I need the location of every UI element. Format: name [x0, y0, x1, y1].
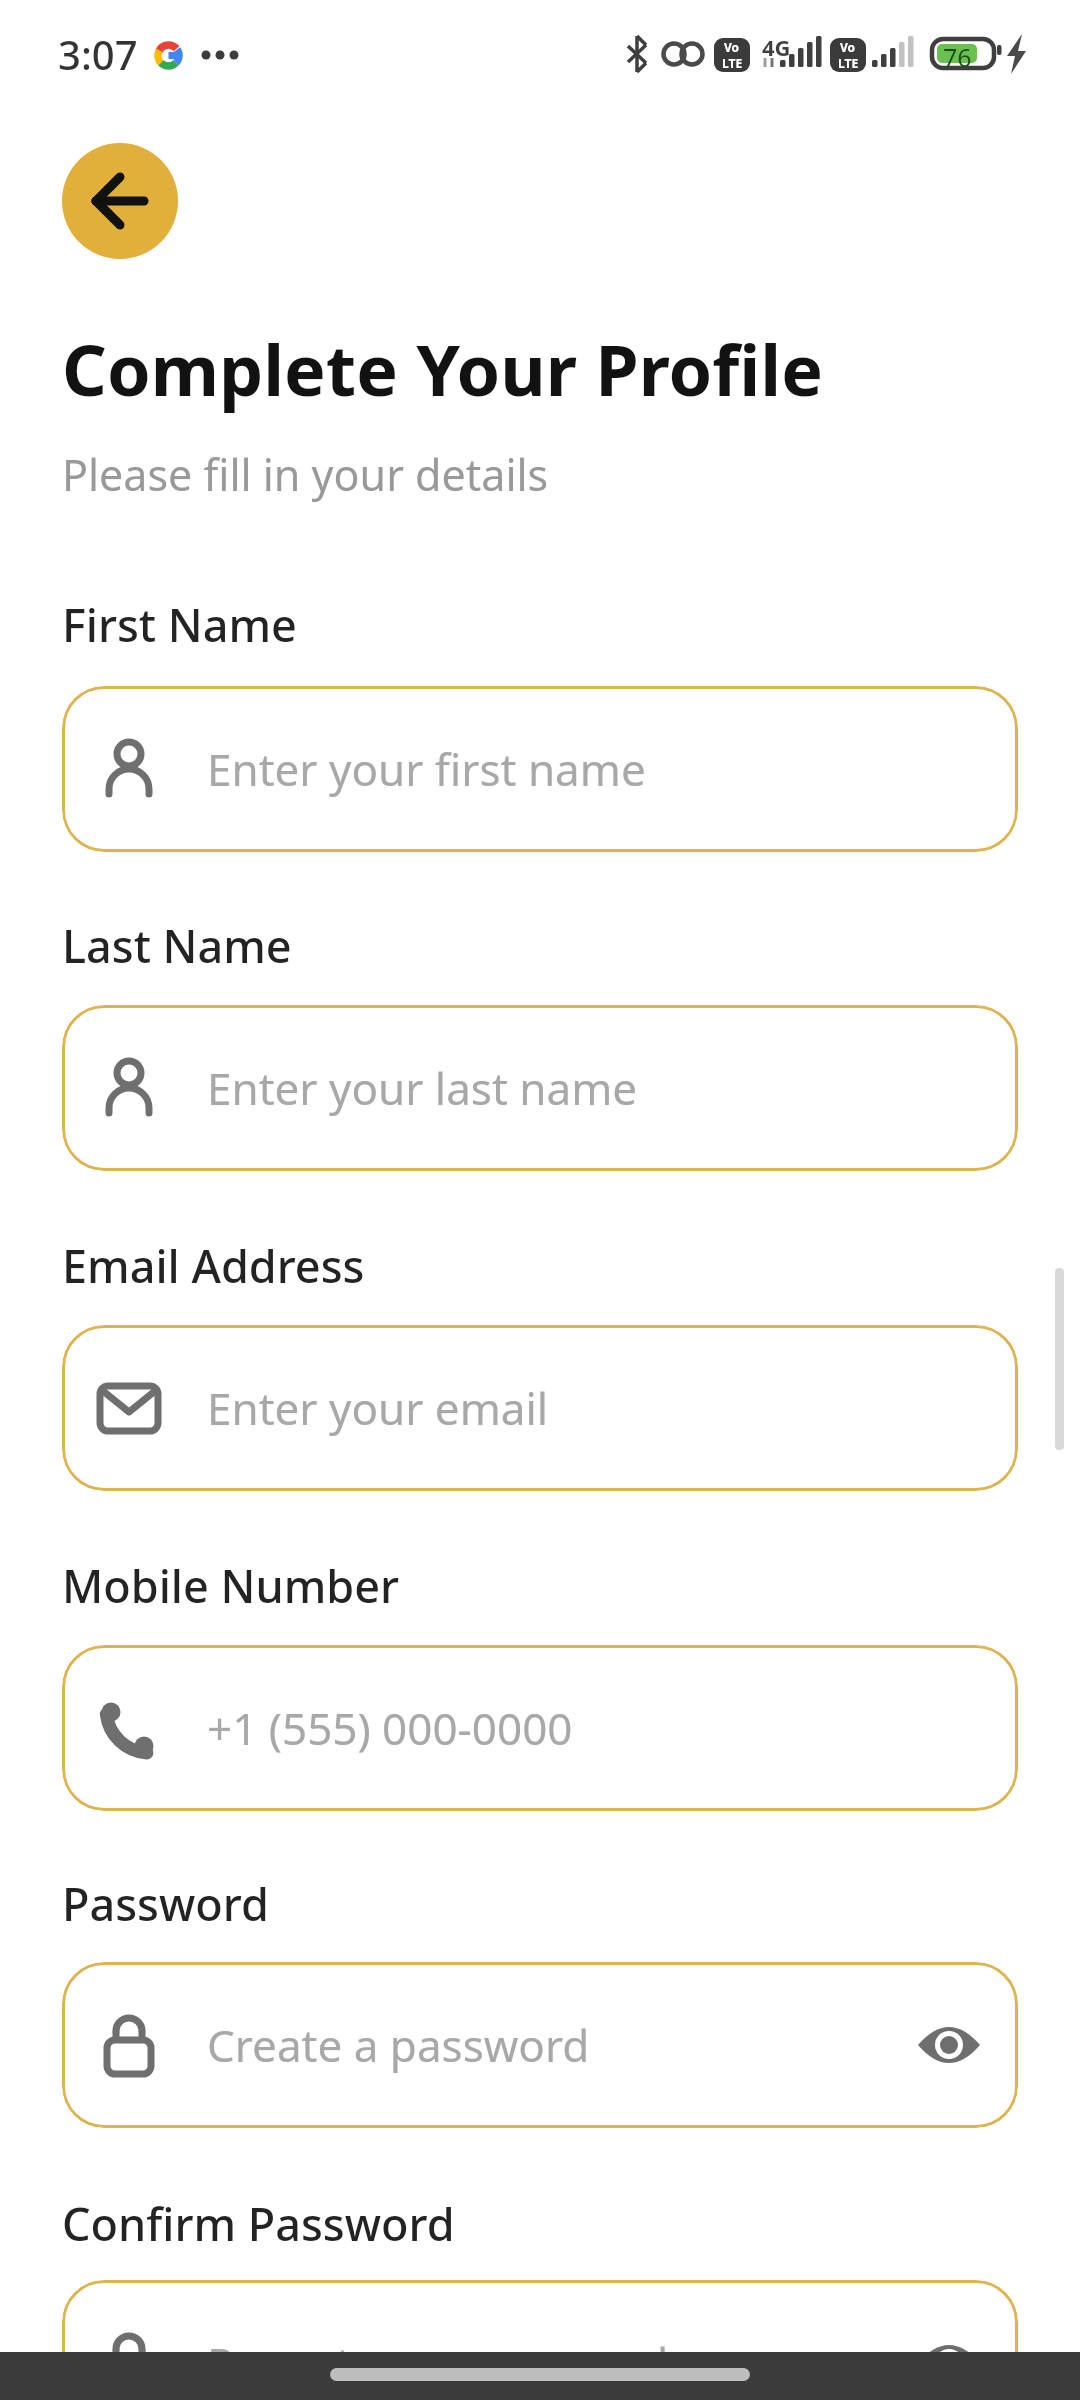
staticText: 4G: [762, 32, 791, 62]
staticText: Mobile Number: [62, 1555, 400, 1616]
staticText: +1 (555) 000-0000: [207, 1698, 573, 1758]
staticText: First Name: [62, 594, 297, 655]
button[interactable]: +1 (555) 000-0000: [62, 1645, 1018, 1811]
button[interactable]: Enter your last name: [62, 1005, 1018, 1171]
button[interactable]: Create a password: [62, 1962, 1018, 2128]
button[interactable]: Repeat your password: [62, 2280, 1018, 2400]
staticText: Enter your last name: [207, 1058, 638, 1118]
staticText: Vo: [840, 39, 856, 55]
staticText: Enter your first name: [207, 739, 646, 799]
staticText: Please fill in your details: [62, 445, 549, 504]
staticText: Email Address: [62, 1235, 365, 1296]
staticText: 76: [943, 40, 972, 74]
button[interactable]: Enter your email: [62, 1325, 1018, 1491]
staticText: LTE: [722, 55, 743, 71]
staticText: Last Name: [62, 915, 292, 976]
staticText: Confirm Password: [62, 2193, 455, 2254]
staticText: Password: [62, 1873, 269, 1934]
staticText: Create a password: [207, 2015, 590, 2075]
staticText: 3:07: [58, 27, 138, 81]
staticText: Enter your email: [207, 1378, 549, 1438]
staticText: Repeat your password: [207, 2333, 669, 2393]
staticText: Vo: [724, 39, 740, 55]
button[interactable]: [62, 143, 178, 259]
staticText: LTE: [838, 55, 859, 71]
staticText: Complete Your Profile: [62, 321, 823, 416]
button[interactable]: Enter your first name: [62, 686, 1018, 852]
